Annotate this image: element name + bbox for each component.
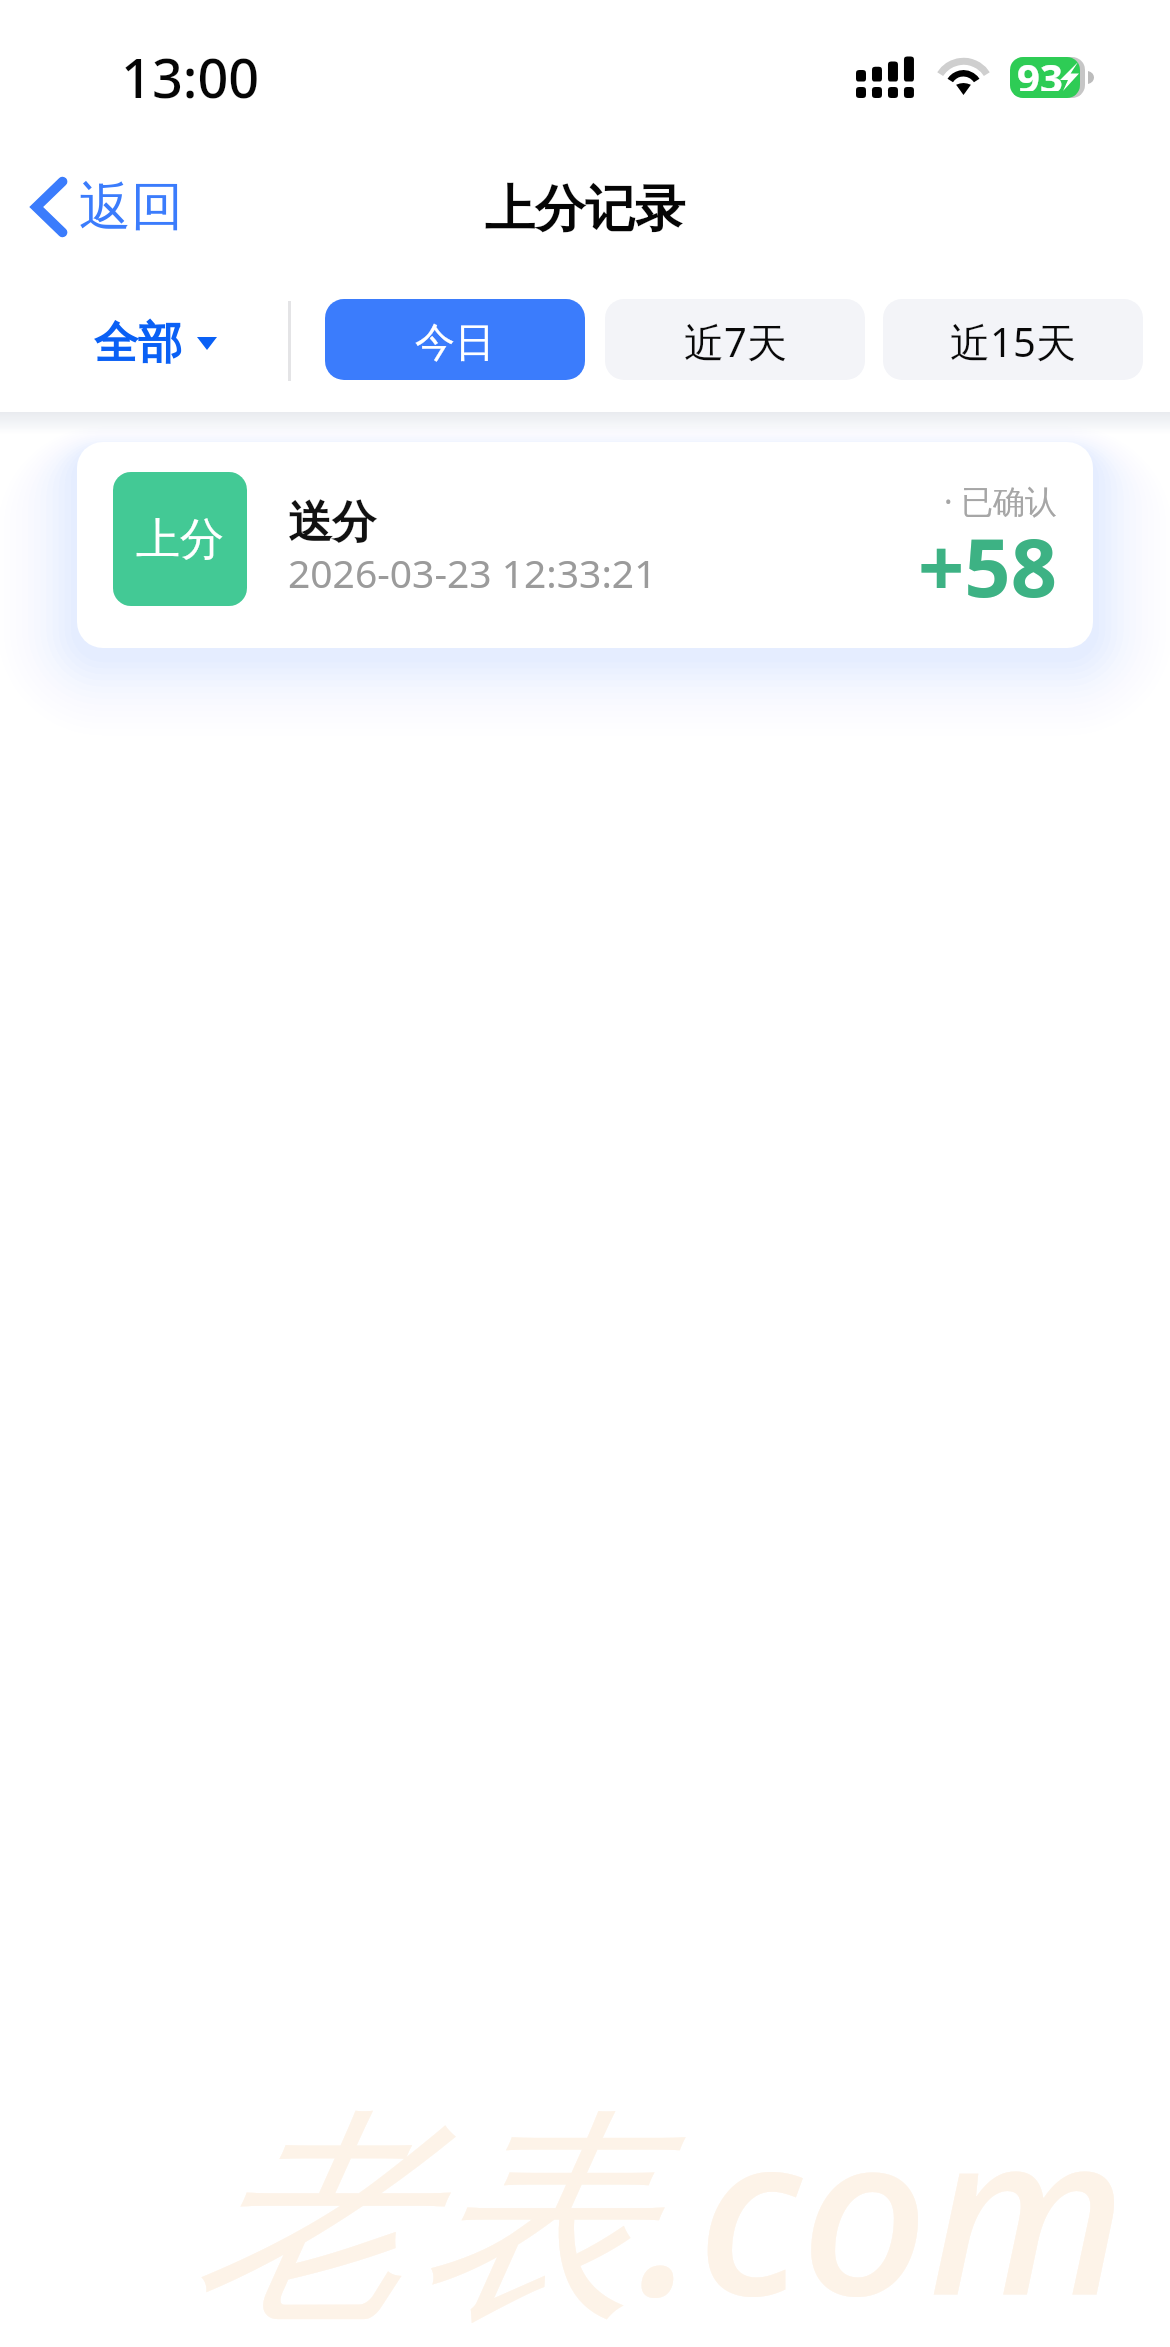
- staticText: 全部: [94, 316, 182, 371]
- staticText: 今日: [415, 317, 495, 367]
- staticText: 近15天: [950, 314, 1076, 369]
- button[interactable]: 返回 Back: [21, 166, 191, 248]
- staticText: 近7天: [684, 314, 787, 369]
- button[interactable]: 今日: [325, 299, 585, 380]
- staticText: +58: [918, 510, 1057, 620]
- staticText: 上分记录: [485, 178, 685, 241]
- button[interactable]: 近7天: [605, 299, 865, 380]
- button[interactable]: 上分: [77, 442, 1093, 648]
- staticText: 2026-03-23 12:33:21: [288, 546, 657, 599]
- button[interactable]: 近15天: [883, 299, 1143, 380]
- staticText: 上分: [136, 512, 224, 567]
- staticText: 13:00: [121, 40, 260, 114]
- button[interactable]: 全部 filter: [78, 306, 233, 381]
- staticText: 返回: [79, 174, 183, 240]
- staticText: 送分: [288, 495, 376, 550]
- staticText: 93: [1017, 57, 1063, 91]
- staticText: · 已确认: [944, 479, 1057, 523]
- staticText: 老表.com: [190, 2056, 1127, 2347]
